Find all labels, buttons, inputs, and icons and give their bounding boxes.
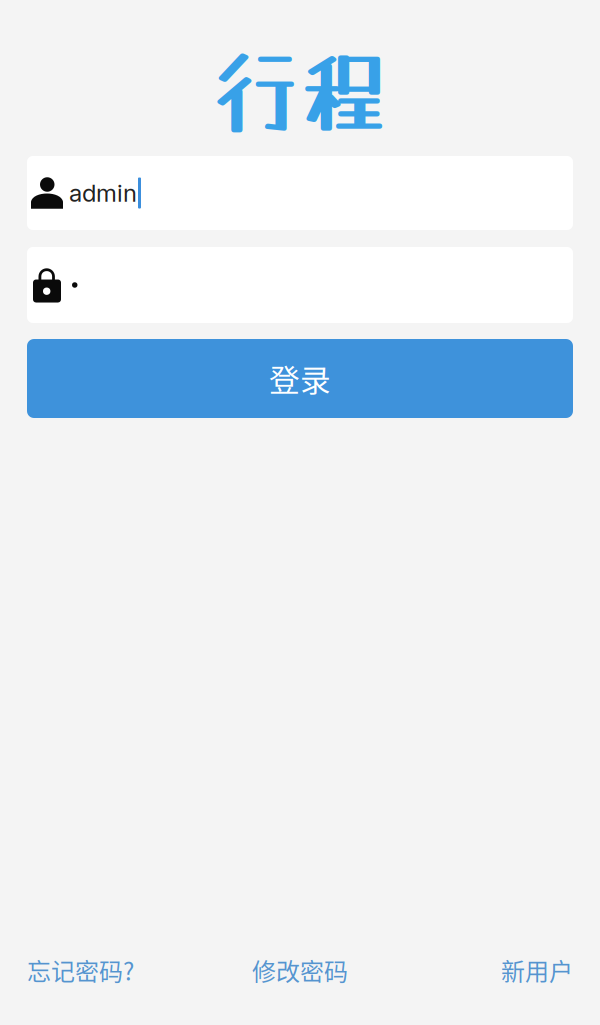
staticText: 行程 [212, 24, 388, 152]
button[interactable]: 密码 [27, 247, 573, 323]
button[interactable]: 忘记密码? [27, 953, 209, 987]
staticText: 登录 [269, 356, 331, 401]
button[interactable]: 新用户 [391, 953, 573, 987]
staticText: 修改密码 [252, 953, 348, 987]
staticText: 忘记密码? [27, 953, 134, 987]
button[interactable]: 修改密码 [209, 953, 391, 987]
staticText: 新用户 [501, 953, 573, 987]
staticText: admin [69, 178, 137, 207]
button[interactable]: 登录 [27, 339, 573, 418]
button[interactable]: 用户名 admin [27, 156, 573, 230]
